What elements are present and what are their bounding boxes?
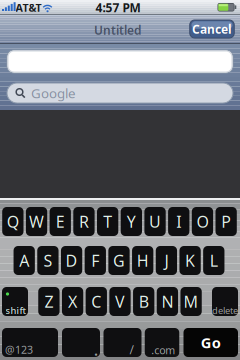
button[interactable]: Address [7,50,233,73]
button[interactable]: . [62,328,100,357]
button[interactable]: R [73,207,95,236]
staticText: .com [151,343,175,357]
staticText: 4:57 PM [95,0,140,15]
staticText: K [185,250,195,271]
staticText: C [91,291,101,312]
button[interactable]: Q [2,207,23,236]
button[interactable]: L [203,246,224,275]
staticText: U [149,211,161,232]
staticText: V [115,291,125,312]
staticText: B [139,291,149,312]
staticText: E [56,211,65,232]
staticText: T [103,211,112,232]
staticText: X [68,291,77,312]
staticText: G [113,250,125,271]
button[interactable]: E [50,207,71,236]
staticText: I [176,211,181,232]
button[interactable]: C [86,287,107,316]
staticText: Google [31,84,76,102]
staticText: Untitled [94,22,142,38]
button[interactable]: P [215,207,237,236]
staticText: Go [201,333,221,352]
staticText: . [94,340,98,360]
staticText: W [29,211,44,232]
staticText: / [129,341,133,357]
button[interactable]: Cancel [190,20,234,38]
staticText: F [91,250,99,271]
button[interactable]: Go [183,328,238,357]
staticText: Z [44,291,53,312]
button[interactable]: Shift [2,287,28,316]
button[interactable]: M [180,287,202,316]
staticText: J [164,250,168,271]
button[interactable]: D [61,246,82,275]
button[interactable]: H [132,246,153,275]
button[interactable]: U [144,207,166,236]
staticText: Q [7,211,19,232]
button[interactable]: Z [38,287,60,316]
button[interactable]: K [179,246,201,275]
staticText: shift [5,304,26,317]
staticText: H [137,250,149,271]
button[interactable]: N [157,287,178,316]
staticText: Y [127,211,136,232]
button[interactable]: A [13,246,35,275]
staticText: A [19,250,29,271]
staticText: Cancel [192,21,232,37]
staticText: O [196,211,208,232]
staticText: P [221,211,231,232]
staticText: S [43,250,52,271]
button[interactable]: B [133,287,154,316]
button[interactable]: O [192,207,213,236]
staticText: AT&T [15,0,41,15]
button[interactable]: J [156,246,177,275]
button[interactable]: .com [145,328,179,357]
button[interactable]: Numbers [2,328,58,357]
staticText: L [210,250,218,271]
staticText: N [161,291,173,312]
button[interactable]: W [26,207,47,236]
button[interactable]: G [108,246,130,275]
staticText: delete [212,304,238,317]
button[interactable]: Search Google [7,83,233,103]
staticText: @123 [5,342,33,357]
button[interactable]: X [62,287,83,316]
button[interactable]: T [97,207,118,236]
staticText: D [66,250,78,271]
button[interactable]: / [103,328,141,357]
button[interactable]: V [109,287,131,316]
button[interactable]: S [37,246,58,275]
staticText: R [79,211,89,232]
button[interactable]: I [168,207,189,236]
button[interactable]: Delete [212,287,238,316]
button[interactable]: F [85,246,106,275]
button[interactable]: Y [121,207,142,236]
staticText: M [184,291,199,312]
